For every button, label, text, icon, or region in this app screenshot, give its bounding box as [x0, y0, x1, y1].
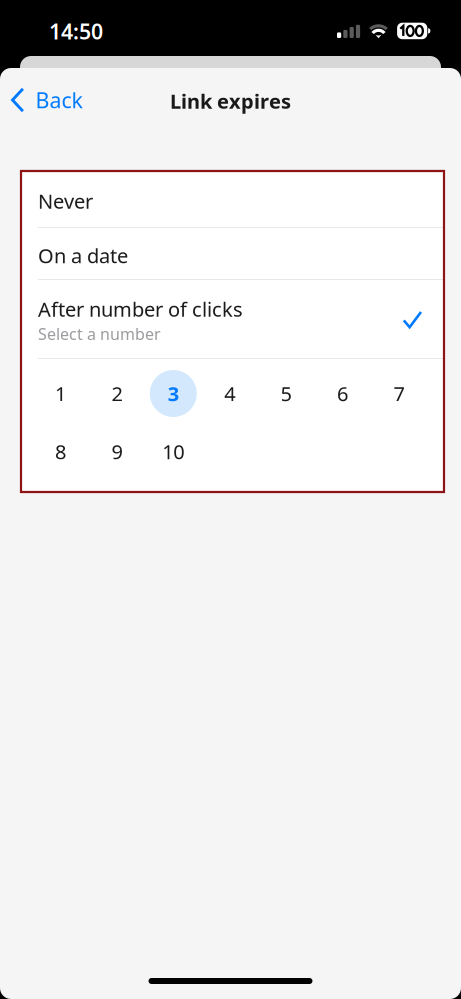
- staticText: On a date: [38, 242, 128, 269]
- button[interactable]: 5: [263, 370, 310, 417]
- staticText: 3: [168, 380, 179, 407]
- staticText: 14:50: [49, 17, 103, 45]
- button[interactable]: 1: [37, 370, 84, 417]
- staticText: Select a number: [38, 323, 161, 344]
- staticText: Never: [38, 188, 93, 214]
- button[interactable]: 10: [150, 428, 197, 475]
- button[interactable]: Never: [21, 171, 444, 227]
- staticText: 9: [111, 438, 122, 465]
- staticText: Link expires: [170, 88, 291, 114]
- staticText: 2: [111, 380, 122, 407]
- staticText: 4: [224, 380, 235, 407]
- staticText: Back: [35, 86, 82, 114]
- button[interactable]: 9: [93, 428, 140, 475]
- staticText: 6: [337, 380, 348, 407]
- button[interactable]: 7: [375, 370, 422, 417]
- button[interactable]: 2: [93, 370, 140, 417]
- button[interactable]: On a date: [21, 228, 444, 279]
- staticText: 5: [281, 380, 292, 407]
- button[interactable]: 8: [37, 428, 84, 475]
- staticText: 1: [55, 380, 66, 407]
- staticText: 7: [393, 380, 404, 407]
- staticText: 10: [162, 438, 184, 465]
- button[interactable]: 3: [150, 370, 197, 417]
- button[interactable]: 4: [206, 370, 253, 417]
- staticText: After number of clicks: [38, 296, 243, 322]
- button[interactable]: After number of clicks: [21, 280, 444, 358]
- button[interactable]: Back: [0, 78, 94, 122]
- button[interactable]: 6: [319, 370, 366, 417]
- staticText: 8: [55, 438, 66, 465]
